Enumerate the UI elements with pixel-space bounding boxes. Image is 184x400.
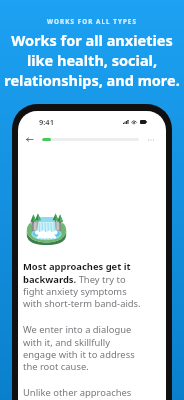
button[interactable]: More options xyxy=(144,133,158,146)
staticText: Most approaches get it backwards. They t… xyxy=(23,260,141,309)
staticText: WORKS FOR ALL TYPES xyxy=(0,17,184,25)
button[interactable]: Back xyxy=(22,133,36,146)
staticText: 9:41 xyxy=(39,117,54,127)
staticText: Unlike other approaches what you'll get … xyxy=(23,386,141,400)
staticText: Works for all anxieties like health, soc… xyxy=(1,30,183,90)
staticText: We enter into a dialogue with it, and sk… xyxy=(23,323,141,372)
